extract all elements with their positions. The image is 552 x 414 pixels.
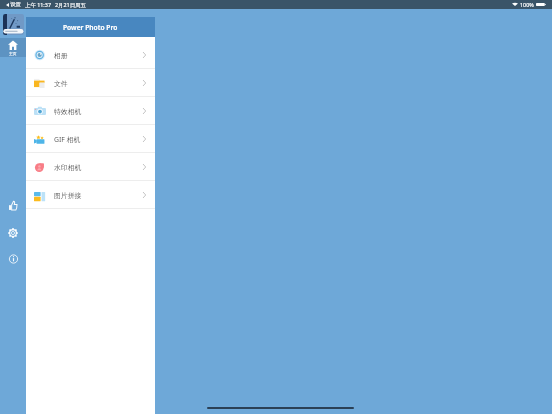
button[interactable]: Info: [0, 248, 26, 270]
staticText: 2月21日周五: [55, 1, 86, 8]
button[interactable]: GIF 相机: [26, 125, 155, 153]
staticText: 主页: [9, 51, 17, 56]
button[interactable]: Settings: [0, 222, 26, 244]
staticText: 文件: [54, 79, 68, 88]
button[interactable]: Power Photo Pro app: [3, 14, 24, 35]
staticText: 设置: [10, 1, 21, 8]
staticText: 水印相机: [54, 163, 82, 172]
staticText: 特效相机: [54, 107, 82, 116]
button[interactable]: 文件: [26, 69, 155, 97]
button[interactable]: 图片拼接: [26, 181, 155, 209]
button[interactable]: Like: [0, 194, 26, 216]
staticText: 图片拼接: [54, 191, 82, 200]
button[interactable]: 相册: [26, 41, 155, 69]
staticText: 100%: [520, 1, 534, 8]
button[interactable]: 水印相机: [26, 153, 155, 181]
staticText: GIF 相机: [54, 135, 81, 144]
button[interactable]: 主页: [0, 38, 26, 57]
staticText: Power Photo Pro: [63, 23, 118, 32]
staticText: 上午 11:37: [25, 1, 51, 8]
button[interactable]: 特效相机: [26, 97, 155, 125]
staticText: 相册: [54, 51, 68, 60]
